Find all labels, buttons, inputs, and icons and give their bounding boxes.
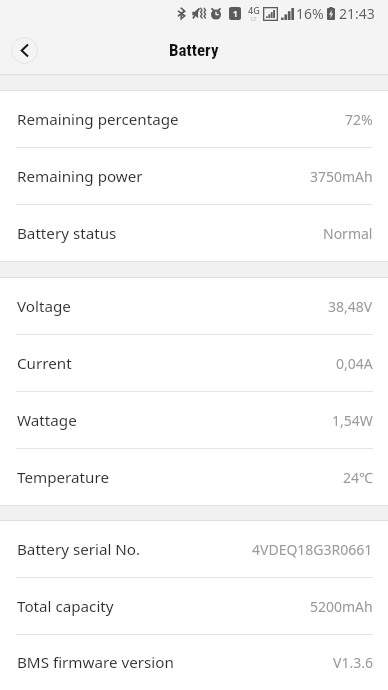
- staticText: Temperature: [17, 467, 109, 488]
- button[interactable]: Remaining power: [0, 148, 388, 204]
- staticText: 72%: [345, 110, 373, 129]
- staticText: 21:43: [339, 4, 375, 23]
- staticText: 4VDEQ18G3R0661: [252, 540, 373, 559]
- button[interactable]: Back: [11, 37, 38, 64]
- button[interactable]: BMS firmware version: [0, 635, 388, 690]
- staticText: Battery: [169, 40, 219, 60]
- staticText: 1,54W: [332, 411, 373, 430]
- staticText: Remaining percentage: [17, 109, 179, 130]
- button[interactable]: Current: [0, 335, 388, 391]
- button[interactable]: Battery status: [0, 205, 388, 261]
- staticText: 38,48V: [328, 297, 373, 316]
- button[interactable]: Voltage: [0, 278, 388, 334]
- staticText: Wattage: [17, 410, 77, 431]
- staticText: Voltage: [17, 296, 71, 317]
- staticText: Battery status: [17, 223, 117, 244]
- button[interactable]: Battery serial No.: [0, 521, 388, 577]
- staticText: 1: [233, 8, 238, 19]
- staticText: 5200mAh: [310, 597, 373, 616]
- staticText: Remaining power: [17, 166, 143, 187]
- staticText: Current: [17, 353, 72, 374]
- staticText: LT: [251, 16, 257, 23]
- staticText: V1.3.6: [333, 653, 373, 672]
- button[interactable]: Temperature: [0, 449, 388, 505]
- staticText: 0,04A: [336, 354, 373, 373]
- staticText: 3750mAh: [310, 167, 373, 186]
- staticText: 4G: [248, 4, 260, 16]
- staticText: BMS firmware version: [17, 652, 174, 673]
- button[interactable]: Remaining percentage: [0, 91, 388, 147]
- button[interactable]: Total capacity: [0, 578, 388, 634]
- button[interactable]: Wattage: [0, 392, 388, 448]
- staticText: Total capacity: [17, 596, 114, 617]
- staticText: Normal: [323, 224, 373, 243]
- staticText: 24℃: [343, 468, 373, 487]
- staticText: 16%: [296, 4, 324, 23]
- staticText: Battery serial No.: [17, 539, 141, 560]
